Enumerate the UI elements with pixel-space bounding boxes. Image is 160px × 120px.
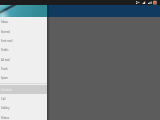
- staticText: All mail: [1, 58, 10, 62]
- staticText: Trash: [1, 67, 8, 71]
- staticText: Spam: [1, 76, 8, 80]
- button[interactable]: Trash: [0, 64, 47, 73]
- staticText: Inbox: [1, 20, 8, 24]
- button[interactable]: Sent mail: [0, 36, 47, 45]
- staticText: Sent mail: [1, 39, 13, 43]
- button[interactable]: Starred: [0, 27, 47, 36]
- staticText: Videos: [1, 116, 10, 120]
- staticText: Gallery: [1, 106, 10, 110]
- staticText: Starred: [1, 30, 10, 34]
- staticText: Drafts: [1, 48, 9, 52]
- staticText: Call: [1, 97, 6, 101]
- button[interactable]: Inbox: [0, 17, 47, 26]
- button[interactable]: Call: [0, 94, 47, 103]
- button[interactable]: Spam: [0, 73, 47, 82]
- button[interactable]: Videos: [0, 113, 47, 120]
- button[interactable]: Gallery: [0, 103, 47, 112]
- staticText: Contacts: [1, 88, 12, 92]
- button[interactable]: Contacts: [0, 85, 47, 94]
- button[interactable]: Drafts: [0, 45, 47, 54]
- button[interactable]: All mail: [0, 55, 47, 64]
